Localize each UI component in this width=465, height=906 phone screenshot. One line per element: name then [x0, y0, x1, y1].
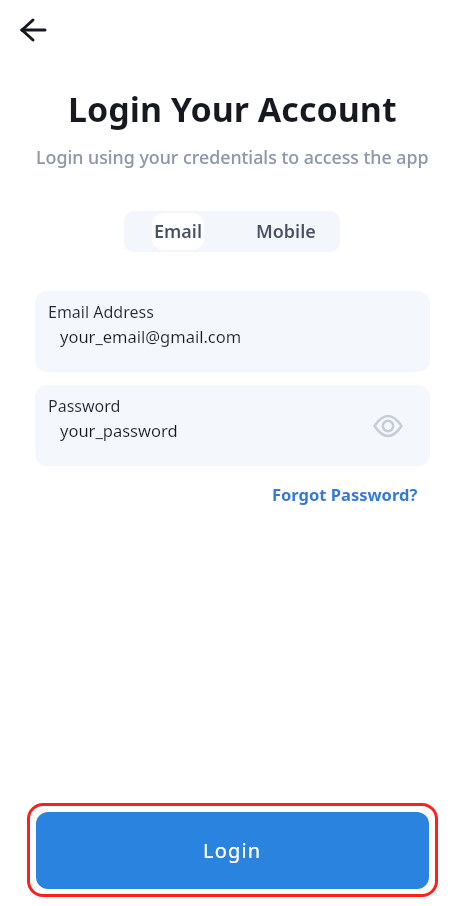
button[interactable]: Forgot Password? — [272, 483, 418, 505]
button[interactable] — [14, 10, 54, 50]
staticText: Email — [154, 219, 203, 244]
button[interactable]: Password — [35, 385, 430, 466]
staticText: your_password — [60, 419, 178, 441]
button[interactable]: Login — [36, 812, 429, 889]
staticText: Login using your credentials to access t… — [36, 145, 429, 169]
button[interactable] — [374, 412, 402, 440]
button[interactable]: Email — [124, 211, 232, 252]
staticText: Email Address — [48, 301, 154, 323]
staticText: Mobile — [256, 219, 316, 244]
button[interactable]: Email Address — [35, 291, 430, 372]
staticText: Login Your Account — [68, 86, 397, 132]
staticText: your_email@gmail.com — [60, 325, 242, 347]
staticText: Password — [48, 395, 121, 417]
staticText: Login — [203, 837, 262, 864]
button[interactable]: Mobile — [232, 211, 340, 252]
